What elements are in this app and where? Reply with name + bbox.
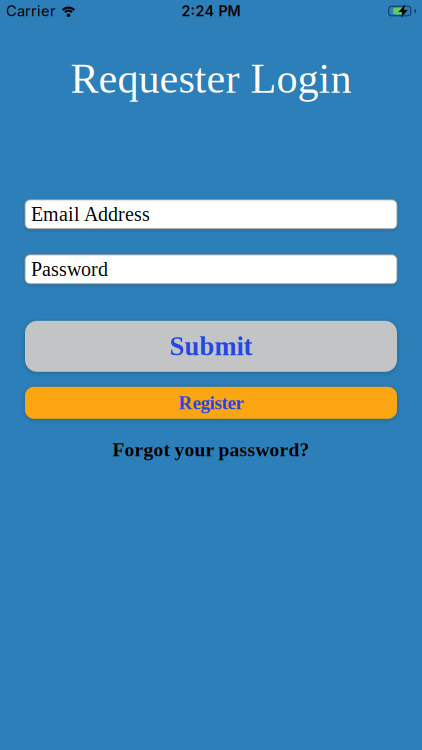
staticText: Carrier	[6, 2, 56, 20]
button[interactable]: Register	[25, 387, 397, 419]
button[interactable]: Email Address	[25, 200, 397, 229]
button[interactable]: Password	[25, 255, 397, 284]
staticText: Email Address	[31, 203, 150, 225]
button[interactable]: Forgot your password?	[112, 439, 309, 460]
staticText: Register	[178, 392, 243, 413]
staticText: Submit	[169, 332, 252, 361]
button[interactable]: Submit	[25, 321, 397, 372]
staticText: Requester Login	[70, 55, 351, 102]
staticText: Password	[31, 258, 108, 280]
staticText: 2:24 PM	[181, 2, 240, 20]
staticText: Forgot your password?	[112, 439, 309, 460]
